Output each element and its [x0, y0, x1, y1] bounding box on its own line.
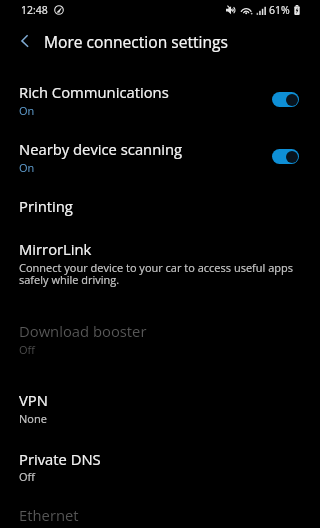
button[interactable]: Ethernet	[0, 498, 320, 528]
staticText: On	[19, 105, 35, 117]
button[interactable]: Private DNS	[0, 442, 320, 498]
button[interactable]: Nearby device scanning	[0, 132, 320, 189]
staticText: VPN	[19, 390, 48, 410]
button[interactable]: Rich Communications	[0, 76, 320, 132]
staticText: On	[19, 162, 35, 174]
button[interactable]: Toggle	[272, 149, 299, 164]
staticText: Download booster	[19, 321, 147, 341]
button[interactable]: Toggle	[272, 92, 299, 107]
button[interactable]: Printing	[0, 189, 320, 232]
button[interactable]: MirrorLink	[0, 232, 320, 315]
button[interactable]: VPN	[0, 384, 320, 442]
staticText: MirrorLink	[19, 239, 92, 259]
staticText: Nearby device scanning	[19, 139, 183, 159]
staticText: None	[19, 413, 47, 425]
button[interactable]: Navigate up	[9, 27, 41, 57]
staticText: Off	[19, 471, 35, 483]
staticText: 12:48	[21, 3, 48, 17]
staticText: Rich Communications	[19, 82, 169, 102]
button[interactable]: Download booster	[0, 315, 320, 384]
staticText: 61%	[269, 3, 290, 17]
staticText: Off	[19, 344, 35, 356]
staticText: Connect your device to your car to acces…	[19, 262, 293, 286]
staticText: Ethernet	[19, 505, 79, 525]
staticText: Private DNS	[19, 449, 101, 469]
staticText: Printing	[19, 196, 73, 216]
staticText: More connection settings	[44, 31, 228, 52]
